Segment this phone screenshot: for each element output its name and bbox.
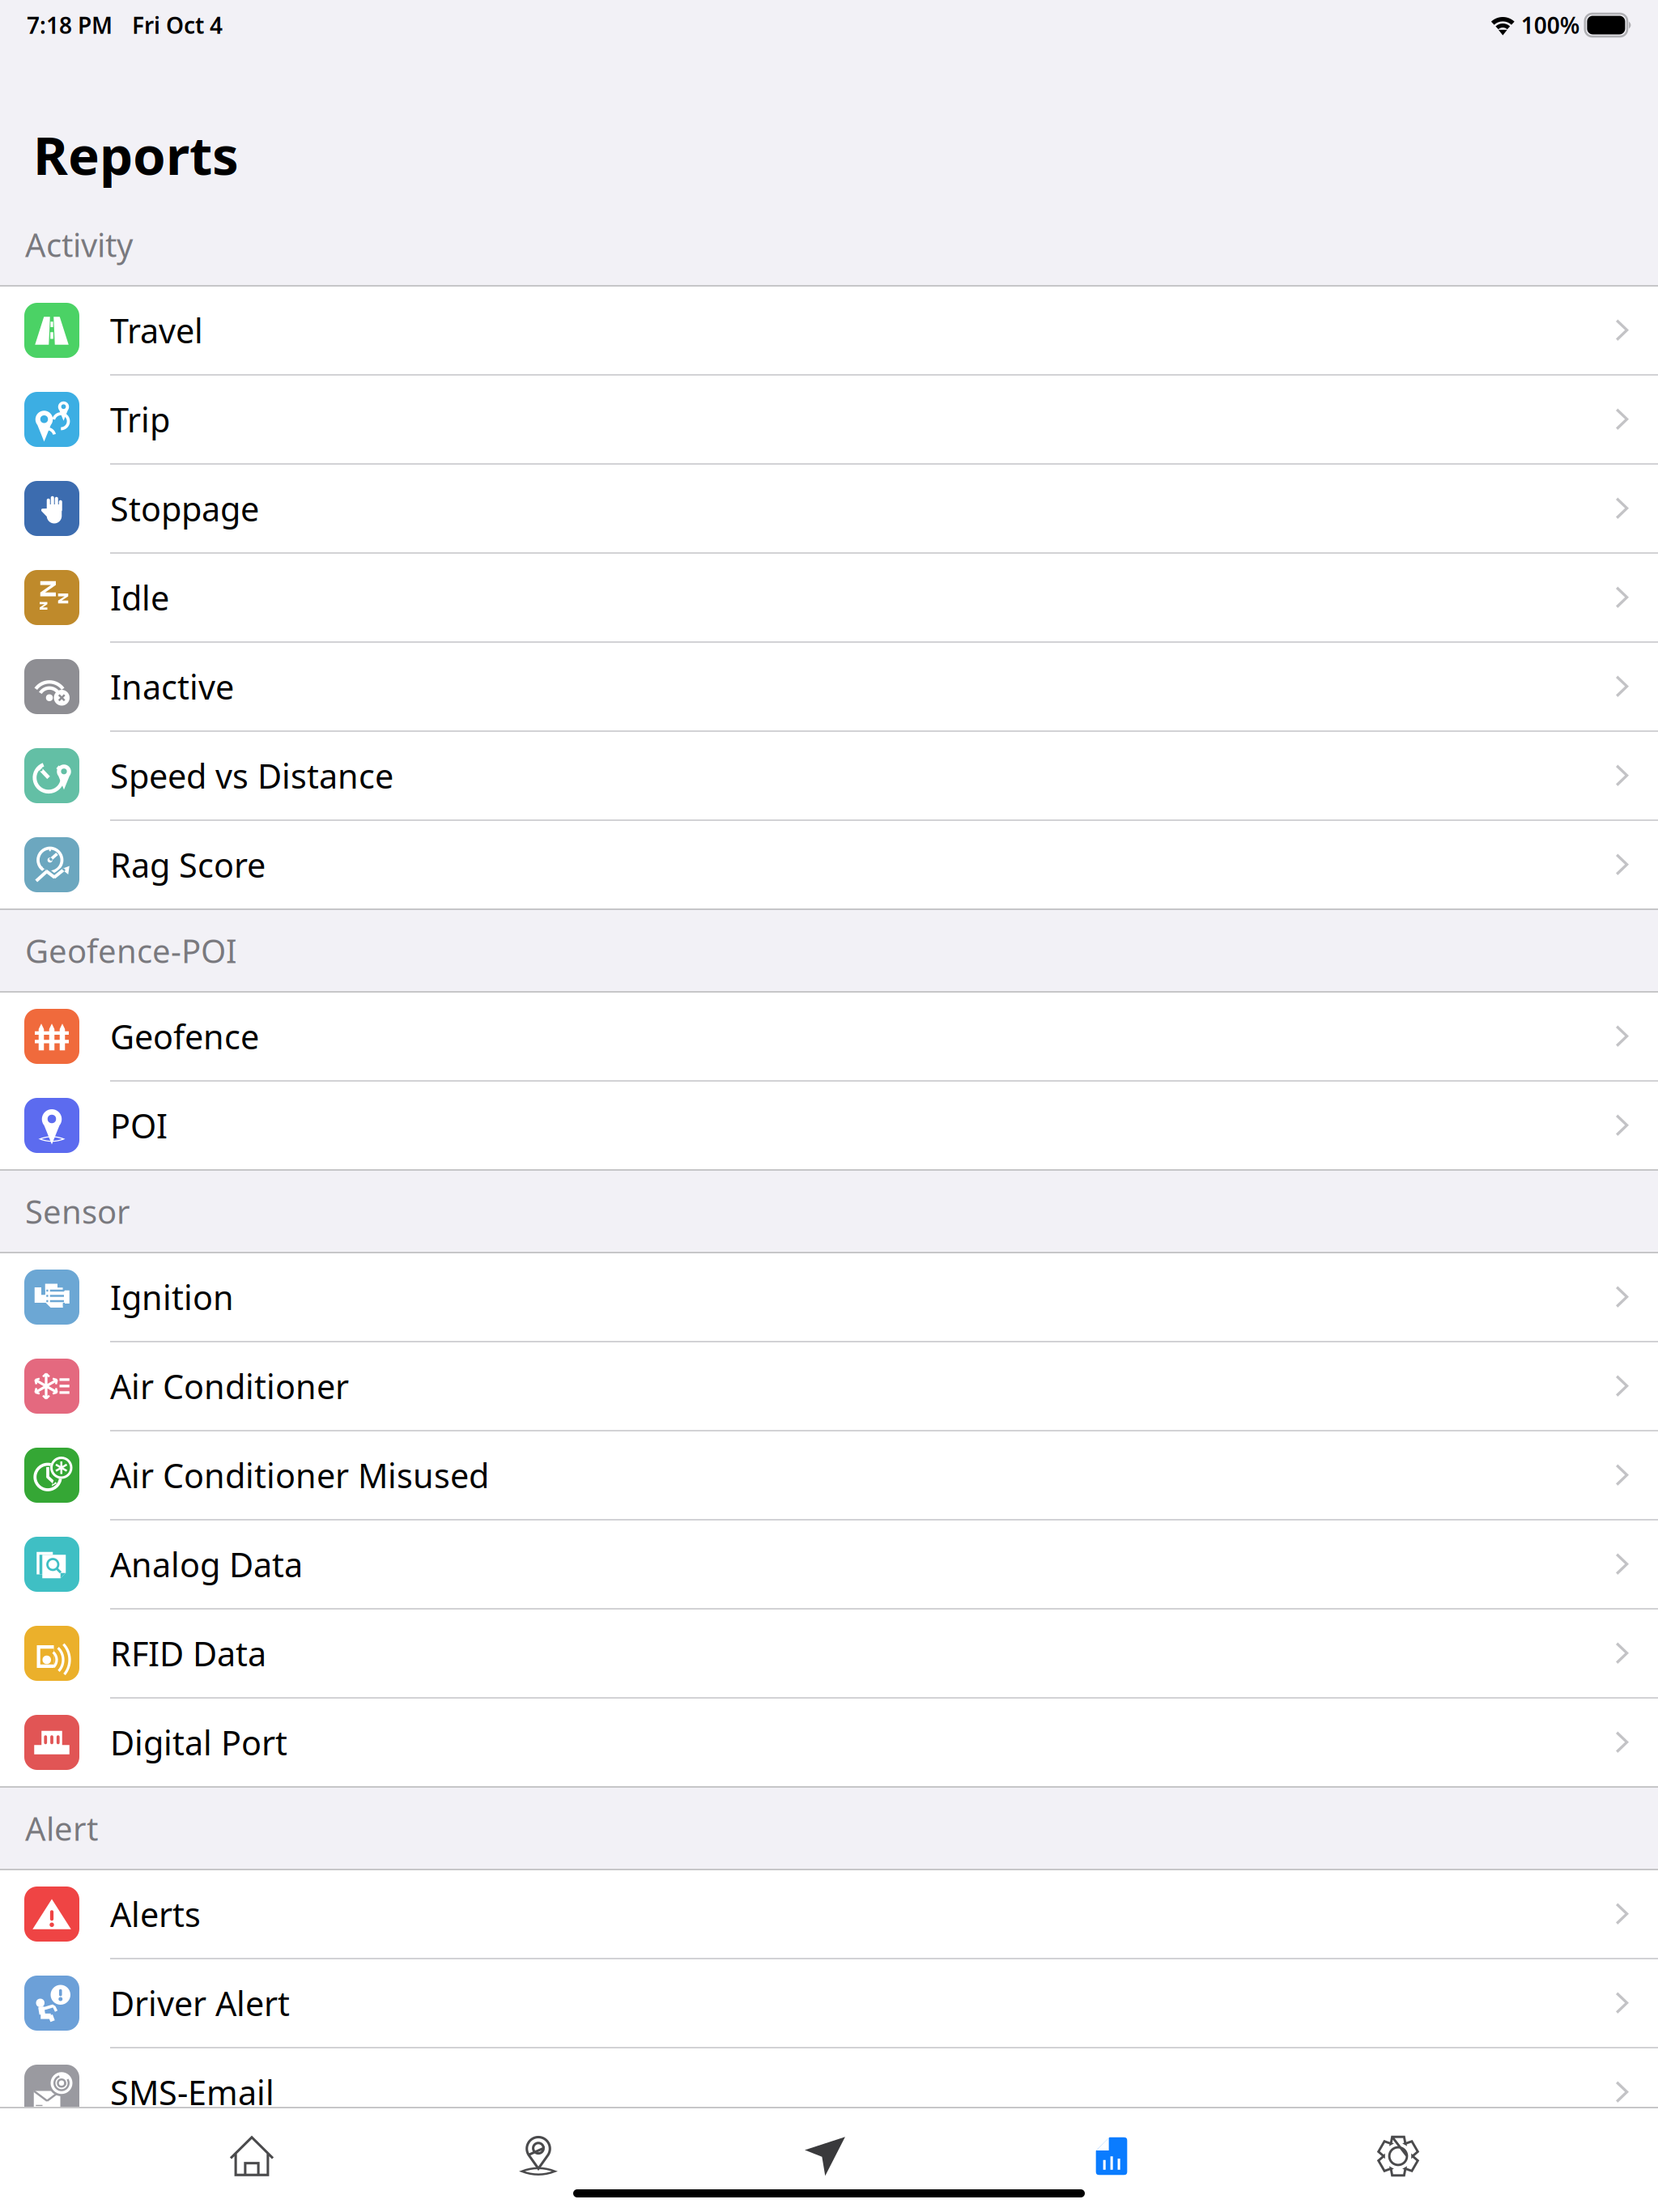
button[interactable]: Air Conditioner [0, 1342, 1658, 1431]
staticText: Air Conditioner [110, 1364, 349, 1408]
staticText: Idle [110, 575, 169, 620]
button[interactable]: Geofence [0, 993, 1658, 1082]
staticText: POI [110, 1103, 168, 1148]
button[interactable]: Alerts [0, 1870, 1658, 1959]
button[interactable]: Ignition [0, 1253, 1658, 1342]
staticText: Speed vs Distance [110, 753, 393, 798]
staticText: Activity [25, 223, 133, 266]
staticText: Stoppage [110, 486, 259, 531]
staticText: Inactive [110, 664, 234, 709]
staticText: Geofence [110, 1014, 259, 1059]
button[interactable]: SMS-Email [0, 2048, 1658, 2138]
staticText: 7:18 PM [27, 10, 113, 40]
button[interactable]: Speed vs Distance [0, 732, 1658, 821]
staticText: Digital Port [110, 1720, 287, 1765]
button[interactable]: Stoppage [0, 465, 1658, 554]
button[interactable]: Digital Port [0, 1699, 1658, 1788]
staticText: Driver Alert [110, 1981, 290, 2025]
button[interactable]: Navigate [682, 2108, 968, 2204]
staticText: Sensor [25, 1190, 130, 1233]
button[interactable]: Rag Score [0, 821, 1658, 910]
staticText: Alerts [110, 1892, 201, 1936]
staticText: Ignition [110, 1275, 234, 1319]
button[interactable]: Home [108, 2108, 395, 2204]
button[interactable]: Travel [0, 287, 1658, 376]
button[interactable]: Reports [968, 2108, 1255, 2204]
button[interactable]: Driver Alert [0, 1959, 1658, 2048]
staticText: Trip [110, 397, 170, 442]
staticText: RFID Data [110, 1631, 266, 1676]
button[interactable]: Places [395, 2108, 682, 2204]
staticText: Fri Oct 4 [132, 10, 223, 40]
button[interactable]: Idle [0, 554, 1658, 643]
staticText: Air Conditioner Misused [110, 1453, 489, 1497]
staticText: Reports [33, 119, 239, 189]
staticText: Rag Score [110, 843, 266, 887]
button[interactable]: Trip [0, 376, 1658, 465]
staticText: Travel [110, 308, 203, 353]
staticText: Analog Data [110, 1542, 303, 1587]
button[interactable]: POI [0, 1082, 1658, 1171]
button[interactable]: Air Conditioner Misused [0, 1431, 1658, 1521]
button[interactable]: RFID Data [0, 1610, 1658, 1699]
button[interactable]: Settings [1255, 2108, 1541, 2204]
staticText: Alert [25, 1807, 98, 1850]
button[interactable]: Inactive [0, 643, 1658, 732]
staticText: 100% [1521, 10, 1580, 40]
button[interactable]: Analog Data [0, 1521, 1658, 1610]
staticText: SMS-Email [110, 2070, 274, 2114]
staticText: Geofence-POI [25, 929, 237, 972]
